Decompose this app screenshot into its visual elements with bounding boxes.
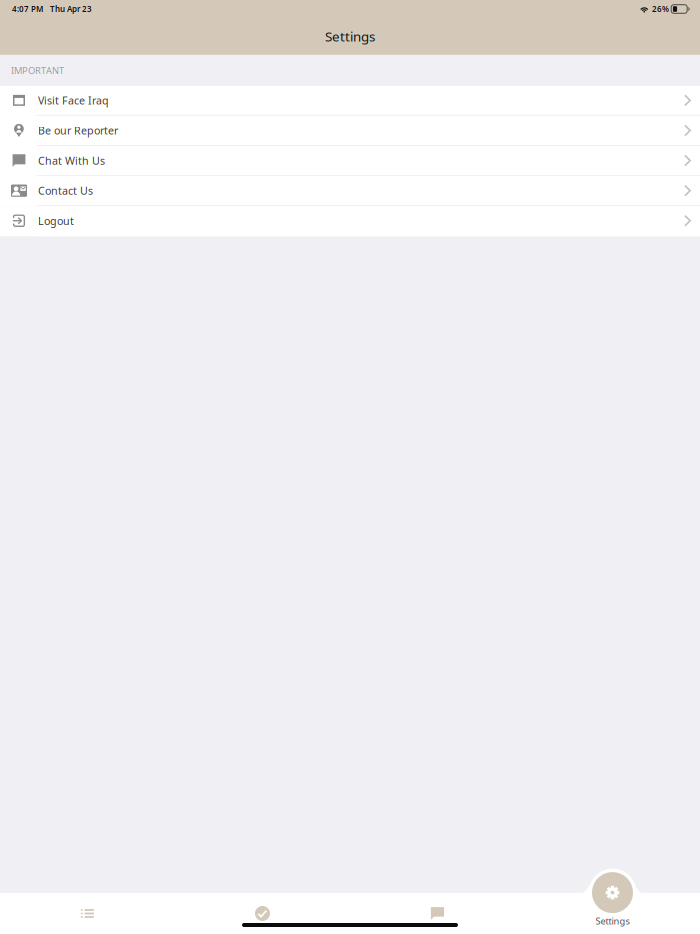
staticText: Thu Apr 23 — [50, 4, 92, 14]
button[interactable]: Chat With Us — [0, 146, 700, 176]
staticText: Be our Reporter — [38, 123, 118, 138]
staticText: Settings — [325, 27, 375, 45]
staticText: Settings — [595, 915, 629, 927]
button[interactable]: Logout — [0, 206, 700, 236]
button[interactable]: Messages — [350, 893, 525, 934]
staticText: Contact Us — [38, 184, 93, 198]
staticText: 4:07 PM — [12, 4, 43, 14]
staticText: Visit Face Iraq — [38, 93, 109, 107]
button[interactable]: Following — [175, 893, 350, 934]
button[interactable]: Settings — [588, 863, 636, 927]
staticText: IMPORTANT — [11, 64, 64, 76]
staticText: Logout — [38, 214, 74, 228]
button[interactable]: Visit Face Iraq — [0, 86, 700, 116]
button[interactable]: Be our Reporter — [0, 116, 700, 146]
staticText: Chat With Us — [38, 153, 105, 168]
button[interactable]: Contact Us — [0, 176, 700, 206]
staticText: 26% — [652, 4, 669, 14]
button[interactable]: Feed — [0, 893, 175, 934]
